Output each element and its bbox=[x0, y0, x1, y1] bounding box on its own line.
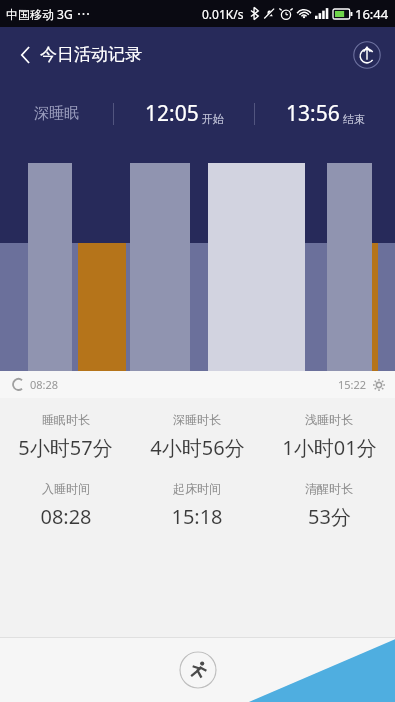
button[interactable]: Activity bbox=[179, 651, 217, 689]
staticText: 4小时56分 bbox=[150, 434, 245, 461]
staticText: 1小时01分 bbox=[282, 434, 377, 461]
staticText: 中国移动 3G bbox=[6, 6, 73, 22]
staticText: 13:56 bbox=[286, 99, 340, 128]
staticText: 入睡时间 bbox=[42, 481, 90, 496]
staticText: 深睡眠 bbox=[34, 104, 79, 123]
staticText: 12:05 bbox=[145, 99, 199, 128]
staticText: 08:28 bbox=[40, 503, 92, 530]
staticText: 5小时57分 bbox=[18, 434, 113, 461]
staticText: 08:28 bbox=[30, 377, 59, 392]
button[interactable]: Back bbox=[4, 33, 48, 77]
staticText: 0.01K/s bbox=[202, 6, 244, 22]
button[interactable]: 起床时间 bbox=[131, 481, 263, 530]
staticText: 今日活动记录 bbox=[40, 44, 142, 65]
button[interactable]: 浅睡时长 bbox=[263, 412, 395, 461]
staticText: 深睡时长 bbox=[173, 412, 221, 427]
staticText: 睡眠时长 bbox=[42, 412, 90, 427]
staticText: 15:18 bbox=[171, 503, 223, 530]
button[interactable]: 睡眠时长 bbox=[0, 412, 131, 461]
staticText: 开始 bbox=[202, 112, 224, 126]
staticText: 结束 bbox=[343, 112, 365, 126]
button[interactable]: 清醒时长 bbox=[263, 481, 395, 530]
staticText: 53分 bbox=[308, 503, 351, 530]
button[interactable]: Share bbox=[347, 35, 387, 75]
staticText: 浅睡时长 bbox=[305, 412, 353, 427]
staticText: 清醒时长 bbox=[305, 481, 353, 496]
staticText: 15:22 bbox=[338, 377, 367, 392]
button[interactable]: 入睡时间 bbox=[0, 481, 131, 530]
staticText: 16:44 bbox=[355, 5, 389, 23]
button[interactable]: 深睡时长 bbox=[131, 412, 263, 461]
staticText: 起床时间 bbox=[173, 481, 221, 496]
